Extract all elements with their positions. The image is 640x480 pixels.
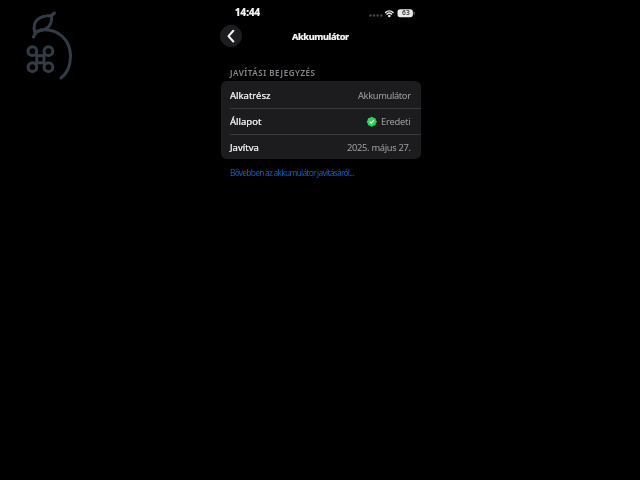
staticText: 63	[402, 8, 410, 17]
staticText: Akkumulátor	[292, 30, 349, 43]
staticText: 2025. május 27.	[347, 141, 411, 154]
staticText: Eredeti	[381, 115, 411, 128]
staticText: Alkatrész	[230, 89, 271, 102]
button[interactable]: Bővebben az akkumulátor javításáról...	[230, 166, 354, 178]
staticText: Bővebben az akkumulátor javításáról...	[230, 167, 354, 178]
staticText: Akkumulátor	[358, 89, 411, 102]
staticText: 14:44	[235, 6, 261, 19]
staticText: JAVÍTÁSI BEJEGYZÉS	[230, 67, 316, 78]
staticText: Állapot	[230, 115, 262, 128]
button[interactable]	[220, 25, 242, 47]
staticText: Javítva	[230, 141, 259, 154]
